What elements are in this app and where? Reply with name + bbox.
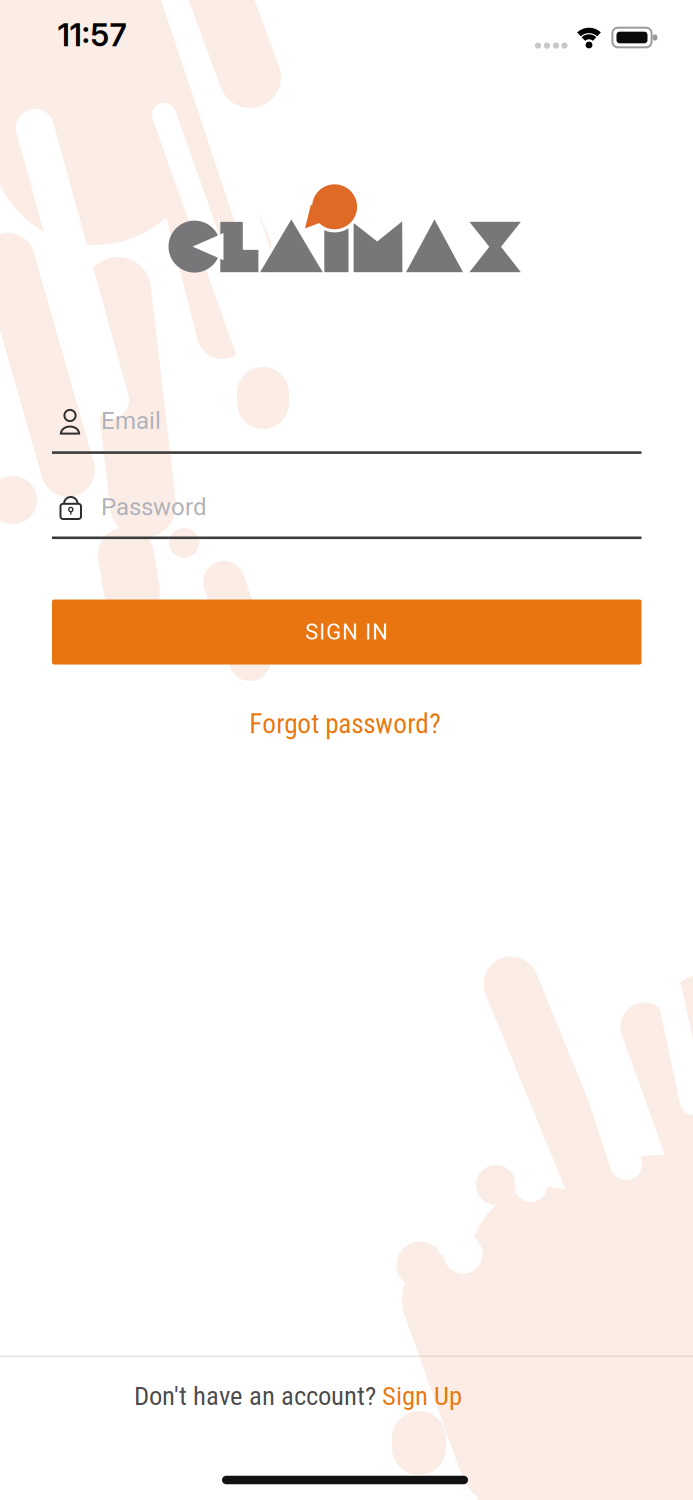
- textField[interactable]: Email: [101, 407, 641, 435]
- secureTextField[interactable]: Password: [101, 493, 641, 521]
- staticText: Email: [101, 407, 161, 435]
- button[interactable]: Forgot password?: [249, 708, 441, 740]
- staticText: Forgot password?: [249, 708, 441, 740]
- staticText: Don't have an account?: [134, 1380, 382, 1412]
- staticText: Sign Up: [382, 1380, 462, 1412]
- staticText: Password: [101, 493, 207, 521]
- staticText: SIGN IN: [305, 619, 388, 645]
- button[interactable]: SIGN IN: [52, 599, 641, 664]
- staticText: 11:57: [57, 16, 126, 54]
- button[interactable]: Sign Up: [382, 1380, 462, 1412]
